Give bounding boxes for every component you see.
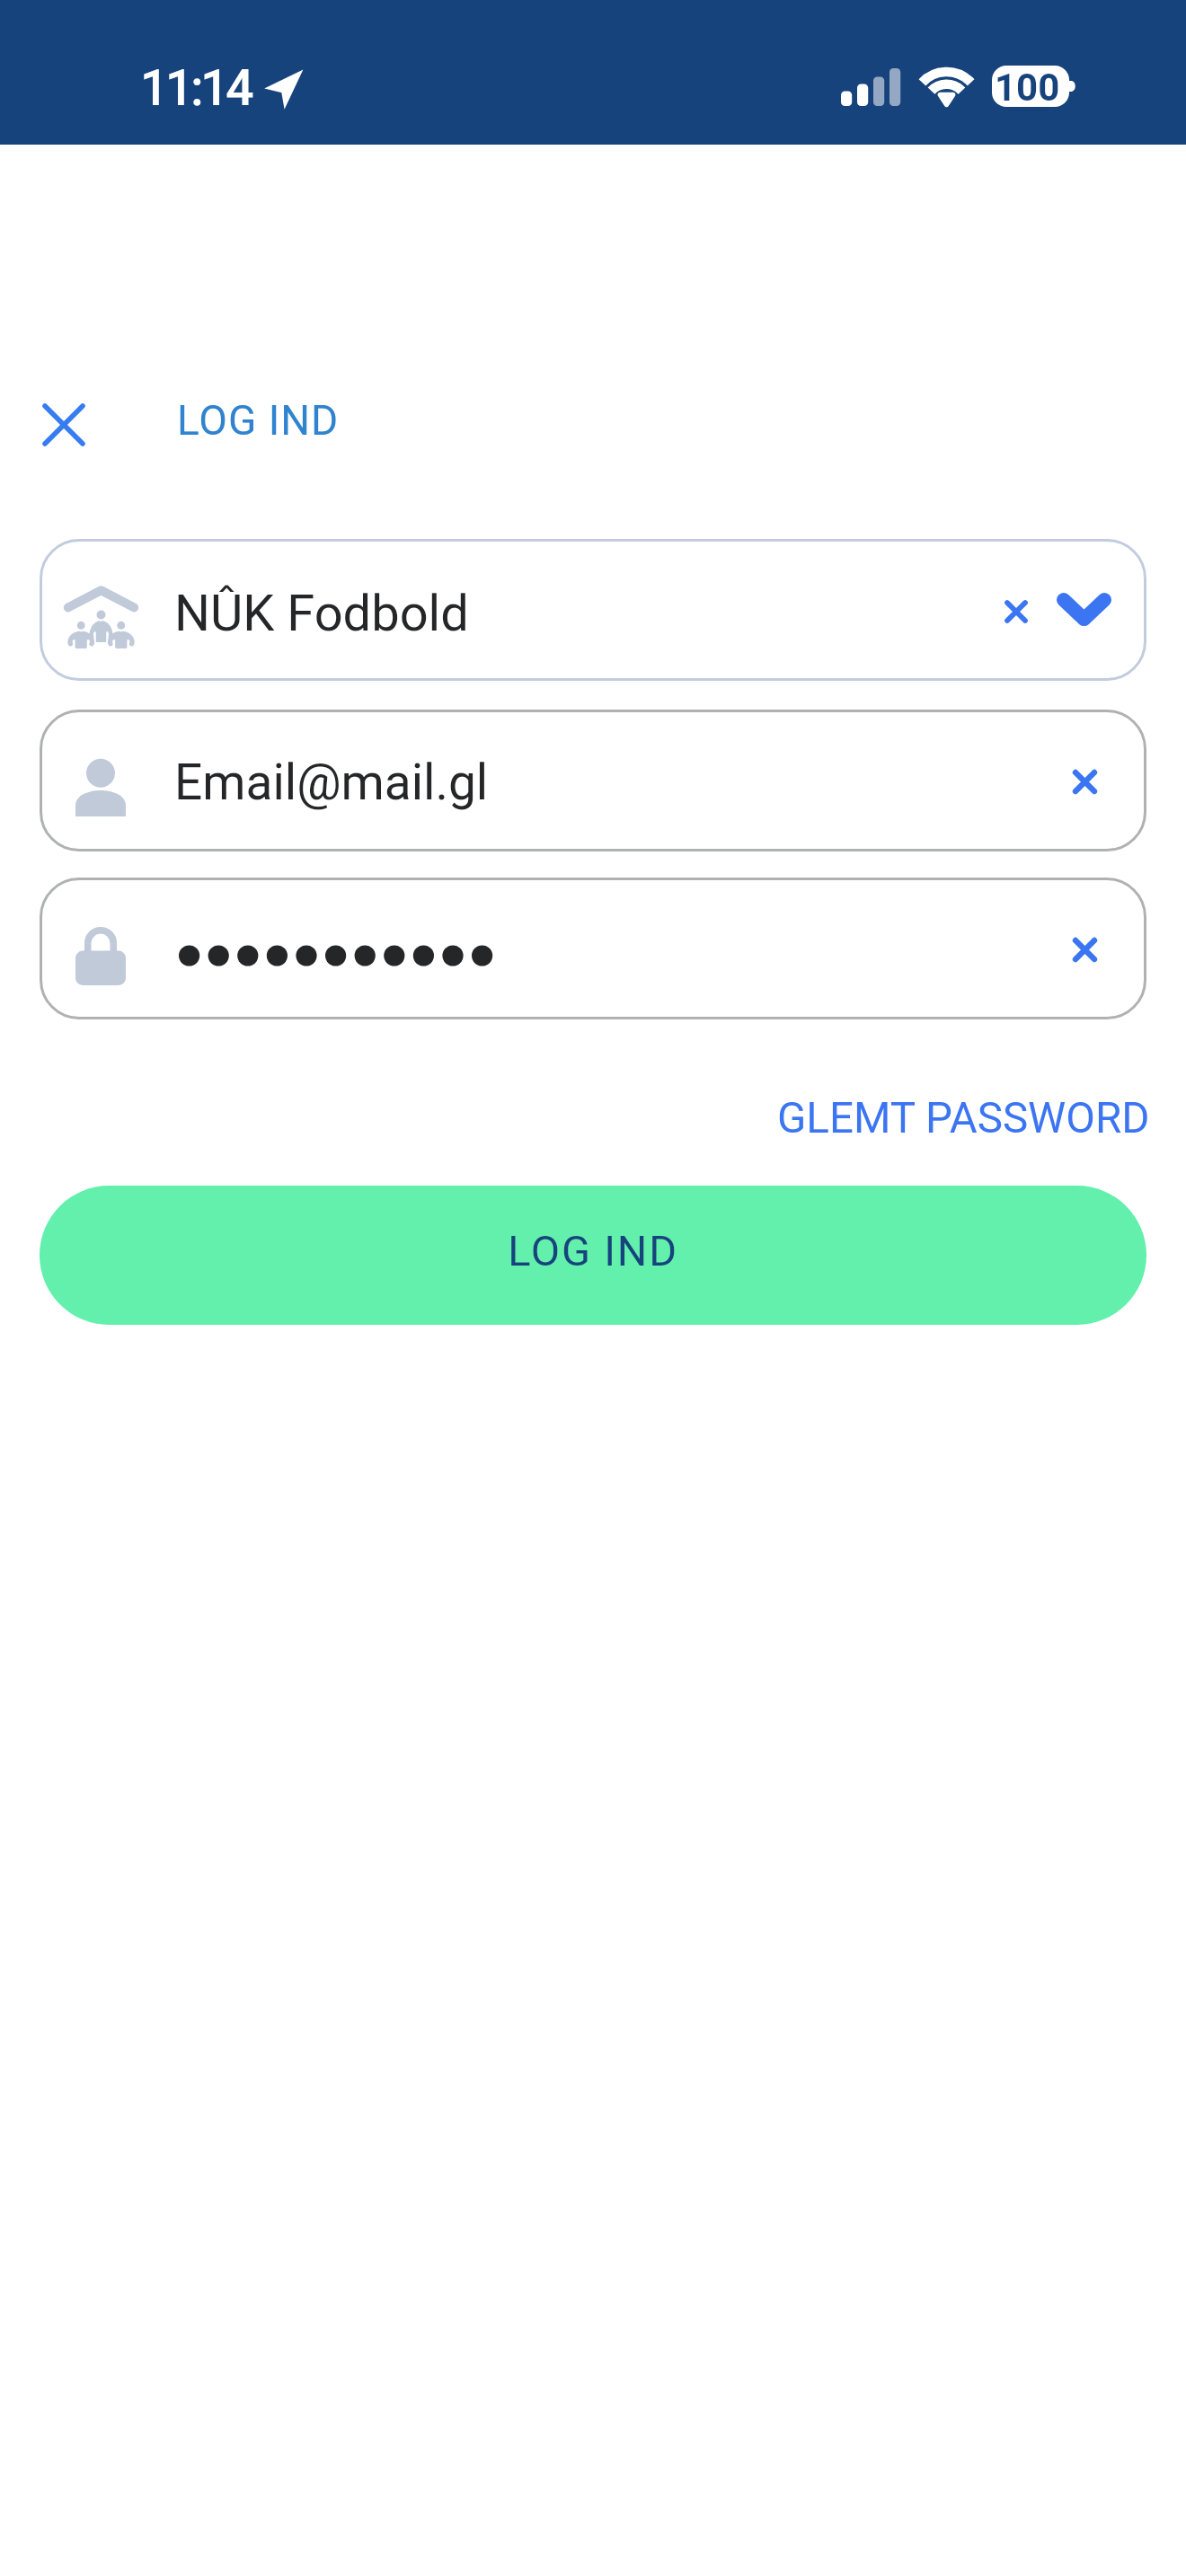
staticText: Email@mail.gl	[174, 754, 489, 811]
button[interactable]: Expand club list	[1048, 573, 1120, 645]
staticText: LOG IND	[177, 396, 340, 445]
button[interactable]: NÛK Fodbold	[40, 539, 1146, 681]
button[interactable]: Email@mail.gl	[40, 710, 1146, 851]
button[interactable]: Clear password	[40, 878, 1146, 1019]
button[interactable]: LOG IND	[40, 1186, 1146, 1325]
button[interactable]: Close	[22, 383, 105, 466]
staticText: 11:14	[140, 59, 252, 117]
staticText: LOG IND	[508, 1226, 678, 1275]
staticText: 100	[995, 66, 1060, 107]
button[interactable]: Clear club	[984, 579, 1049, 644]
button[interactable]: Clear email	[1051, 748, 1118, 815]
button[interactable]: Clear password	[1051, 916, 1118, 983]
button[interactable]: GLEMT PASSWORD	[777, 1093, 1150, 1143]
staticText: GLEMT PASSWORD	[777, 1093, 1150, 1143]
staticText: NÛK Fodbold	[174, 584, 469, 643]
